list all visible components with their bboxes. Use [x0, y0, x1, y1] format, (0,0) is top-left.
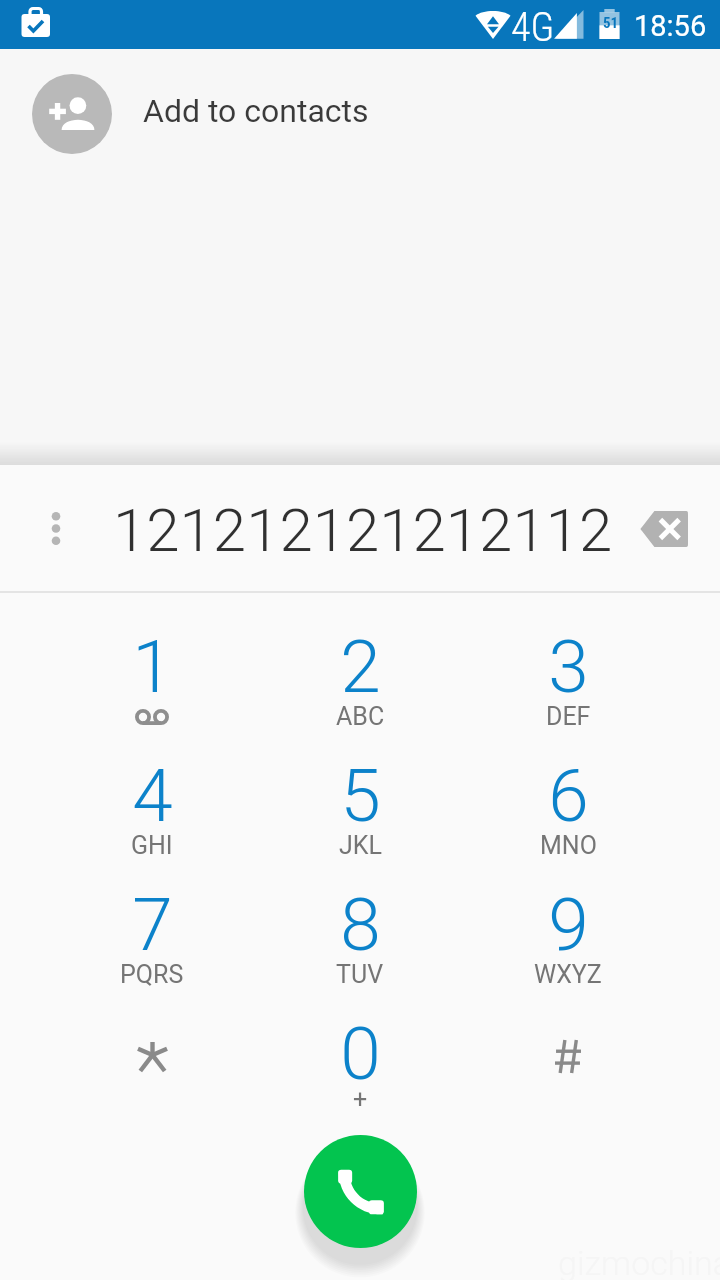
button[interactable]: 8 [256, 866, 464, 995]
button[interactable]: 6 [464, 737, 672, 866]
button[interactable]: 5 [256, 737, 464, 866]
staticText: WXYZ [534, 960, 602, 989]
staticText: 8 [340, 882, 381, 968]
staticText: 7 [132, 882, 173, 968]
staticText: PQRS [120, 960, 184, 989]
button[interactable]: Backspace [607, 465, 720, 592]
staticText: 0 [340, 1011, 381, 1097]
staticText: 1 [132, 624, 173, 710]
button[interactable]: 7 [48, 866, 256, 995]
button[interactable] [48, 995, 256, 1124]
button[interactable]: 4 [48, 737, 256, 866]
staticText: DEF [546, 702, 591, 731]
staticText: 4 [132, 753, 173, 839]
staticText: TUV [336, 960, 384, 989]
staticText: GHI [131, 831, 173, 860]
button[interactable]: Add to contacts [0, 49, 720, 179]
button[interactable]: 1 [48, 608, 256, 737]
staticText: 5 [340, 753, 381, 839]
staticText: 9 [548, 882, 589, 968]
staticText: ABC [336, 702, 385, 731]
button[interactable]: Call [304, 1135, 417, 1248]
button[interactable]: 2 [256, 608, 464, 737]
staticText: 121212121212112 [113, 495, 613, 565]
staticText: 6 [548, 753, 589, 839]
staticText: 51 [603, 14, 619, 32]
staticText: + [353, 1085, 368, 1114]
staticText: JKL [339, 831, 382, 860]
staticText: 3 [548, 624, 589, 710]
staticText: Add to contacts [143, 92, 369, 130]
button[interactable]: 9 [464, 866, 672, 995]
button[interactable]: 0 [256, 995, 464, 1124]
staticText: MNO [540, 831, 597, 860]
staticText: 18:56 [634, 9, 707, 43]
staticText: 2 [340, 624, 381, 710]
button[interactable]: 3 [464, 608, 672, 737]
staticText: 4G [511, 4, 555, 51]
button[interactable]: More options [0, 465, 112, 592]
button[interactable] [464, 995, 672, 1124]
